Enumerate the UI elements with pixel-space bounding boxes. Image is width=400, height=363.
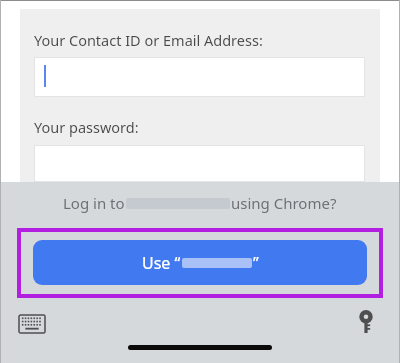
button[interactable]: Keyboard (17, 312, 47, 336)
staticText: ” (253, 252, 259, 274)
button[interactable] (34, 57, 365, 97)
staticText: Use “ (142, 252, 181, 274)
staticText: Your Contact ID or Email Address: (34, 30, 263, 50)
staticText: using Chrome? (231, 193, 337, 213)
staticText: Log in to (63, 193, 125, 213)
button[interactable]: Use “ (33, 240, 367, 285)
button[interactable] (34, 145, 365, 182)
button[interactable]: Passwords (350, 306, 382, 336)
staticText: Your password: (34, 117, 139, 137)
